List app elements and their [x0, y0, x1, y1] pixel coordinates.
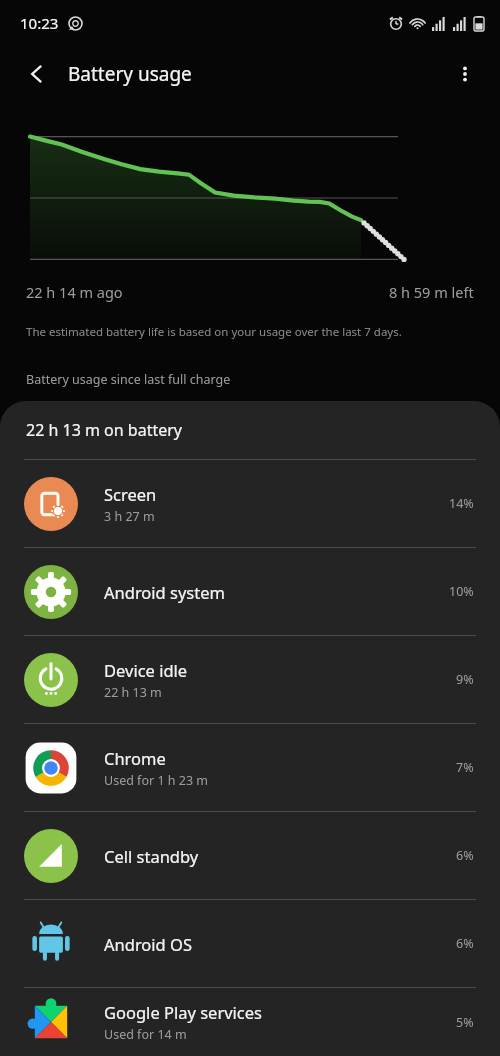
- staticText: Used for 14 m: [104, 1026, 187, 1043]
- staticText: Battery usage: [68, 61, 192, 87]
- staticText: Chrome: [104, 747, 166, 769]
- button[interactable]: Android OS: [0, 900, 500, 987]
- staticText: Battery usage since last full charge: [26, 371, 231, 388]
- staticText: 10:23: [20, 13, 59, 33]
- button[interactable]: More options: [442, 51, 488, 97]
- button[interactable]: Screen: [0, 460, 500, 547]
- staticText: 22 h 14 m ago: [26, 282, 123, 302]
- button[interactable]: Chrome: [0, 724, 500, 811]
- button[interactable]: Back: [14, 51, 60, 97]
- button[interactable]: Android system: [0, 548, 500, 635]
- staticText: Screen: [104, 483, 157, 505]
- staticText: 7%: [456, 759, 474, 776]
- staticText: 10%: [449, 583, 474, 600]
- staticText: 6%: [456, 935, 474, 952]
- staticText: Android system: [104, 581, 225, 603]
- staticText: 22 h 13 m: [104, 684, 162, 701]
- button[interactable]: Device idle: [0, 636, 500, 723]
- staticText: 14%: [449, 495, 474, 512]
- staticText: 5%: [456, 1014, 474, 1031]
- staticText: Google Play services: [104, 1001, 262, 1023]
- staticText: 6%: [456, 847, 474, 864]
- staticText: Cell standby: [104, 845, 199, 867]
- staticText: 8 h 59 m left: [389, 282, 474, 302]
- staticText: 22 h 13 m on battery: [26, 419, 182, 441]
- staticText: Device idle: [104, 659, 188, 681]
- staticText: 9%: [456, 671, 474, 688]
- staticText: Used for 1 h 23 m: [104, 772, 209, 789]
- staticText: 3 h 27 m: [104, 508, 155, 525]
- staticText: Android OS: [104, 933, 192, 955]
- staticText: The estimated battery life is based on y…: [26, 324, 402, 340]
- button[interactable]: Google Play services: [0, 988, 500, 1056]
- button[interactable]: Cell standby: [0, 812, 500, 899]
